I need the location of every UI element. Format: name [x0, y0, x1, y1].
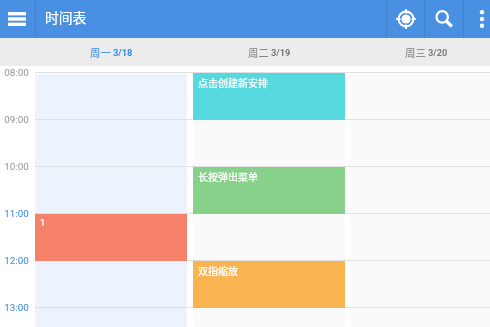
staticText: 周一 [90, 45, 111, 60]
button[interactable]: 双指缩放 [193, 261, 345, 308]
staticText: 10:00 [4, 161, 29, 172]
staticText: 周二 [248, 45, 269, 60]
button[interactable]: 长按弹出菜单 [193, 167, 345, 214]
staticText: 时间表 [45, 7, 87, 27]
button[interactable] [350, 74, 490, 327]
button[interactable]: Search [425, 0, 463, 38]
staticText: 08:00 [4, 67, 29, 78]
button[interactable]: Go to today [387, 0, 424, 38]
staticText: 3/19 [271, 47, 291, 58]
staticText: 3/18 [113, 47, 133, 58]
button[interactable]: 1 [35, 214, 187, 261]
button[interactable]: Open navigation menu [0, 0, 35, 38]
staticText: 3/20 [428, 47, 448, 58]
button[interactable]: 周二 [193, 38, 345, 66]
button[interactable]: 周三 [350, 38, 490, 66]
staticText: 09:00 [4, 114, 29, 125]
staticText: 13:00 [4, 302, 29, 313]
staticText: 点击创建新安排 [198, 75, 268, 89]
button[interactable]: More options [464, 0, 490, 38]
staticText: 1 [40, 217, 46, 228]
staticText: 双指缩放 [198, 263, 238, 277]
button[interactable]: 周一 [35, 38, 187, 66]
staticText: 12:00 [4, 255, 29, 266]
button[interactable] [35, 74, 187, 327]
staticText: 长按弹出菜单 [198, 169, 258, 183]
button[interactable] [193, 74, 345, 327]
staticText: 11:00 [4, 208, 29, 219]
staticText: 周三 [405, 45, 426, 60]
button[interactable]: 点击创建新安排 [193, 73, 345, 120]
